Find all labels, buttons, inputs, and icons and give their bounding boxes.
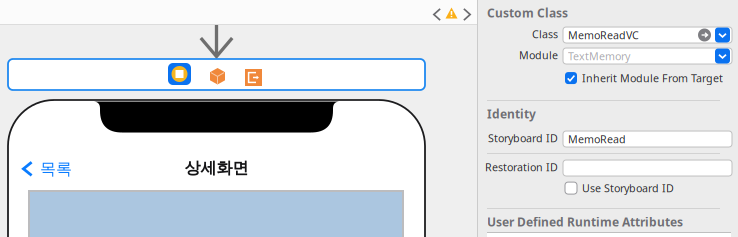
button[interactable]: MemoRead — [563, 131, 732, 147]
staticText: Inherit Module From Target — [582, 71, 723, 85]
staticText: Storyboard ID — [488, 131, 558, 145]
button[interactable]: TextMemory — [563, 48, 732, 64]
button[interactable]: View Controller — [168, 63, 191, 85]
staticText: Class — [532, 27, 558, 41]
button[interactable]: Inherit Module From Target — [565, 71, 723, 85]
staticText: Use Storyboard ID — [582, 181, 674, 195]
staticText: Restoration ID — [485, 160, 558, 174]
button[interactable]: 목록 — [8, 156, 72, 182]
button[interactable]: Use Storyboard ID — [565, 181, 674, 195]
staticText: 상세화면 — [184, 158, 248, 178]
staticText: Module — [519, 48, 558, 62]
button[interactable]: Issues — [443, 5, 460, 21]
button[interactable]: Previous — [430, 5, 444, 24]
staticText: MemoRead — [568, 132, 626, 146]
button[interactable]: MemoReadVC — [563, 27, 732, 43]
staticText: Identity — [487, 106, 536, 122]
button[interactable]: First Responder — [210, 68, 225, 84]
staticText: User Defined Runtime Attributes — [487, 214, 683, 230]
button[interactable]: Next — [460, 5, 474, 24]
button[interactable]: Exit — [245, 69, 262, 86]
staticText: 목록 — [40, 159, 72, 179]
staticText: MemoReadVC — [568, 28, 639, 42]
staticText: Custom Class — [487, 5, 568, 21]
button[interactable] — [563, 160, 732, 176]
staticText: TextMemory — [568, 49, 630, 63]
